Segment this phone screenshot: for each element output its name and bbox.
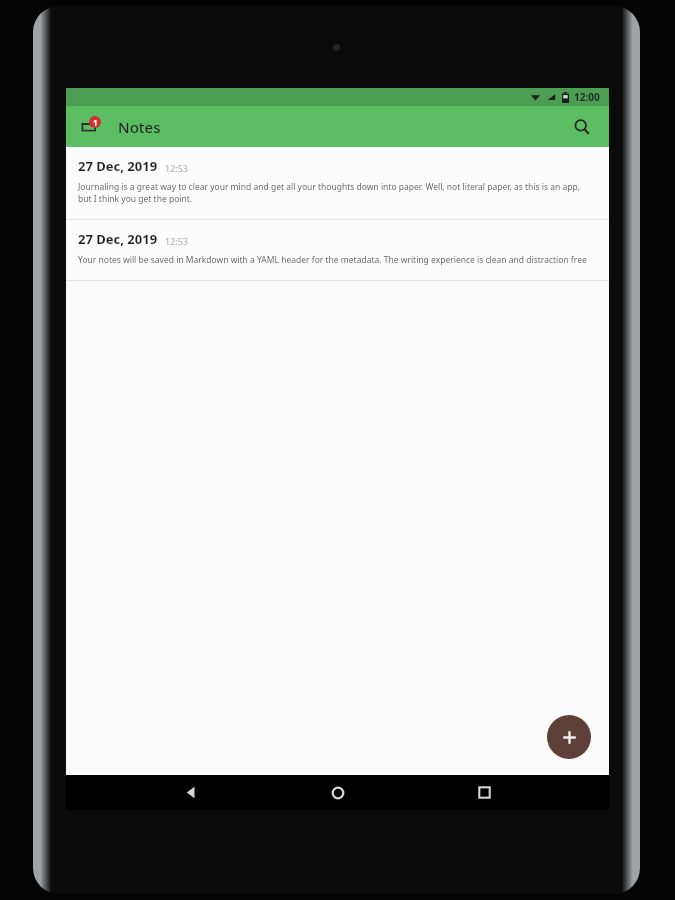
staticText: Notes bbox=[118, 117, 161, 137]
staticText: 12:00 bbox=[574, 90, 600, 104]
button[interactable]: 27 Dec, 2019 bbox=[66, 220, 609, 280]
staticText: 27 Dec, 2019 bbox=[78, 157, 158, 175]
staticText: 12:53 bbox=[165, 162, 189, 174]
staticText: 1 bbox=[93, 117, 98, 128]
button[interactable]: Menu bbox=[75, 112, 105, 142]
button[interactable]: Recent apps bbox=[462, 775, 506, 810]
button[interactable]: Back bbox=[169, 775, 213, 810]
button[interactable]: Home bbox=[316, 775, 360, 810]
button[interactable]: 27 Dec, 2019 bbox=[66, 147, 609, 219]
staticText: 12:53 bbox=[165, 235, 189, 247]
staticText: Journaling is a great way to clear your … bbox=[78, 181, 595, 205]
staticText: Your notes will be saved in Markdown wit… bbox=[78, 254, 587, 266]
staticText: 27 Dec, 2019 bbox=[78, 230, 158, 248]
button[interactable]: Search bbox=[566, 111, 598, 143]
button[interactable]: New note bbox=[547, 715, 591, 759]
